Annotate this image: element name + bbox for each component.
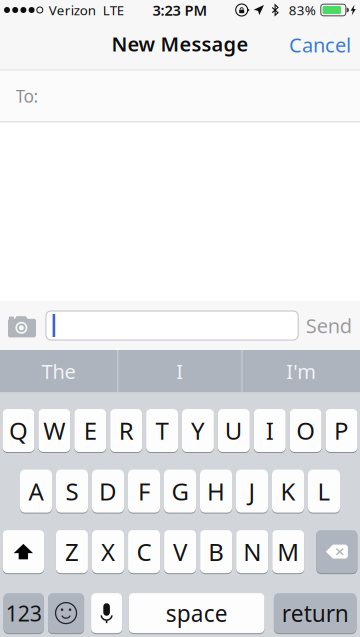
staticText: Y — [191, 415, 205, 446]
staticText: B — [208, 536, 224, 568]
button[interactable]: Dictation — [91, 593, 122, 633]
button[interactable]: S — [56, 470, 88, 513]
staticText: S — [65, 475, 78, 507]
staticText: C — [136, 536, 151, 568]
button[interactable]: I — [118, 350, 241, 393]
staticText: D — [99, 475, 117, 507]
button[interactable]: Delete — [316, 530, 357, 573]
button[interactable]: Y — [182, 409, 214, 452]
staticText: M — [277, 536, 299, 568]
staticText: G — [171, 475, 188, 507]
button[interactable]: Camera — [0, 301, 46, 350]
staticText: New Message — [111, 31, 248, 57]
staticText: I — [176, 358, 183, 385]
button[interactable]: Shift — [3, 530, 44, 573]
button[interactable]: G — [164, 470, 196, 513]
button[interactable]: 123 — [4, 593, 44, 633]
button[interactable]: H — [200, 470, 232, 513]
button[interactable]: Send — [298, 301, 359, 350]
staticText: I'm — [286, 358, 316, 385]
button[interactable]: F — [128, 470, 160, 513]
staticText: N — [243, 536, 261, 568]
button[interactable]: P — [326, 409, 357, 452]
staticText: K — [280, 475, 295, 507]
button[interactable]: D — [92, 470, 124, 513]
staticText: Verizon — [49, 1, 96, 19]
button[interactable]: I'm — [243, 350, 360, 393]
button[interactable]: J — [236, 470, 268, 513]
button[interactable]: Cancel — [280, 20, 360, 69]
button[interactable]: X — [92, 530, 124, 573]
staticText: T — [155, 415, 168, 446]
staticText: P — [334, 415, 349, 446]
staticText: space — [166, 598, 228, 628]
staticText: Q — [9, 415, 28, 446]
button[interactable]: Z — [56, 530, 88, 573]
staticText: 123 — [6, 599, 42, 627]
staticText: return — [282, 598, 349, 628]
staticText: L — [317, 475, 330, 507]
button[interactable]: U — [218, 409, 250, 452]
button[interactable]: R — [110, 409, 142, 452]
button[interactable]: The — [0, 350, 117, 393]
staticText: To: — [16, 84, 39, 107]
staticText: R — [119, 415, 134, 446]
staticText: W — [43, 415, 65, 446]
staticText: The — [41, 358, 75, 385]
button[interactable]: A — [20, 470, 52, 513]
staticText: I — [266, 415, 274, 446]
staticText: Z — [65, 536, 79, 568]
staticText: F — [138, 475, 150, 507]
button[interactable]: B — [200, 530, 232, 573]
button[interactable]: return — [274, 593, 356, 633]
staticText: LTE — [103, 1, 124, 19]
staticText: Cancel — [289, 32, 351, 58]
button[interactable]: W — [38, 409, 70, 452]
staticText: U — [225, 415, 243, 446]
button[interactable]: Emoji — [48, 593, 84, 633]
staticText: 83% — [289, 1, 316, 19]
button[interactable]: space — [129, 593, 264, 633]
staticText: O — [296, 415, 315, 446]
staticText: X — [101, 536, 115, 568]
staticText: 3:23 PM — [152, 0, 207, 20]
staticText: Send — [306, 312, 352, 339]
button[interactable]: Q — [2, 409, 34, 452]
button[interactable]: C — [128, 530, 160, 573]
staticText: V — [173, 536, 187, 568]
button[interactable]: M — [272, 530, 304, 573]
button[interactable]: K — [272, 470, 304, 513]
button[interactable]: V — [164, 530, 196, 573]
staticText: J — [248, 475, 255, 507]
staticText: H — [207, 475, 225, 507]
staticText: A — [28, 475, 43, 507]
staticText: E — [84, 415, 97, 446]
button[interactable]: L — [308, 470, 340, 513]
button[interactable]: N — [236, 530, 268, 573]
button[interactable]: E — [74, 409, 106, 452]
button[interactable]: T — [146, 409, 178, 452]
button[interactable]: O — [290, 409, 322, 452]
button[interactable]: I — [254, 409, 286, 452]
